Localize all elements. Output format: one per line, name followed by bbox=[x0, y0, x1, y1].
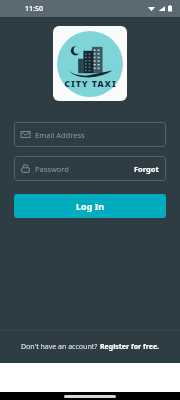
staticText: CITY TAXI bbox=[64, 77, 117, 89]
button[interactable]: Password bbox=[14, 156, 166, 181]
staticText: Forgot bbox=[134, 164, 159, 174]
button[interactable]: Forgot bbox=[134, 164, 159, 174]
button[interactable]: Don't have an account? bbox=[0, 331, 180, 363]
staticText: Email Address bbox=[35, 130, 159, 140]
staticText: 11:50 bbox=[25, 4, 43, 14]
other: City Taxi logo bbox=[57, 31, 123, 97]
staticText: Register for free. bbox=[100, 342, 160, 352]
button[interactable]: Log In bbox=[14, 194, 166, 218]
staticText: Password bbox=[35, 164, 134, 174]
button[interactable]: Email Address bbox=[14, 122, 166, 147]
staticText: Don't have an account? bbox=[21, 342, 100, 352]
staticText: Log In bbox=[76, 200, 105, 212]
